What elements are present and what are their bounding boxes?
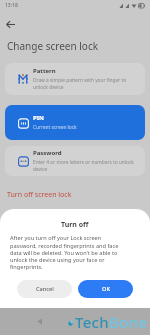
staticText: Draw a simple pattern with your finger t… <box>33 77 127 91</box>
button[interactable]: Cancel <box>17 280 72 298</box>
staticText: Change screen lock <box>7 39 99 53</box>
staticText: After you turn off your Lock screen pass… <box>10 234 119 270</box>
staticText: Current screen lock <box>33 124 77 131</box>
staticText: Cancel <box>36 285 54 293</box>
button[interactable]: Password <box>5 146 145 176</box>
staticText: OK <box>102 285 110 293</box>
button[interactable] <box>6 20 16 30</box>
button[interactable]: Turn off screen lock <box>7 190 72 200</box>
staticText: PIN <box>33 114 44 122</box>
staticText: 13:18 <box>5 2 18 9</box>
button[interactable]: Pattern <box>5 63 145 95</box>
staticText: Enter 4 or more letters or numbers to un… <box>33 159 134 173</box>
staticText: Turn off <box>61 220 89 230</box>
staticText: Password <box>33 149 62 157</box>
staticText: TechBone <box>75 312 148 332</box>
button[interactable]: PIN <box>5 105 145 140</box>
staticText: Pattern <box>33 67 56 75</box>
button[interactable]: OK <box>78 280 133 298</box>
